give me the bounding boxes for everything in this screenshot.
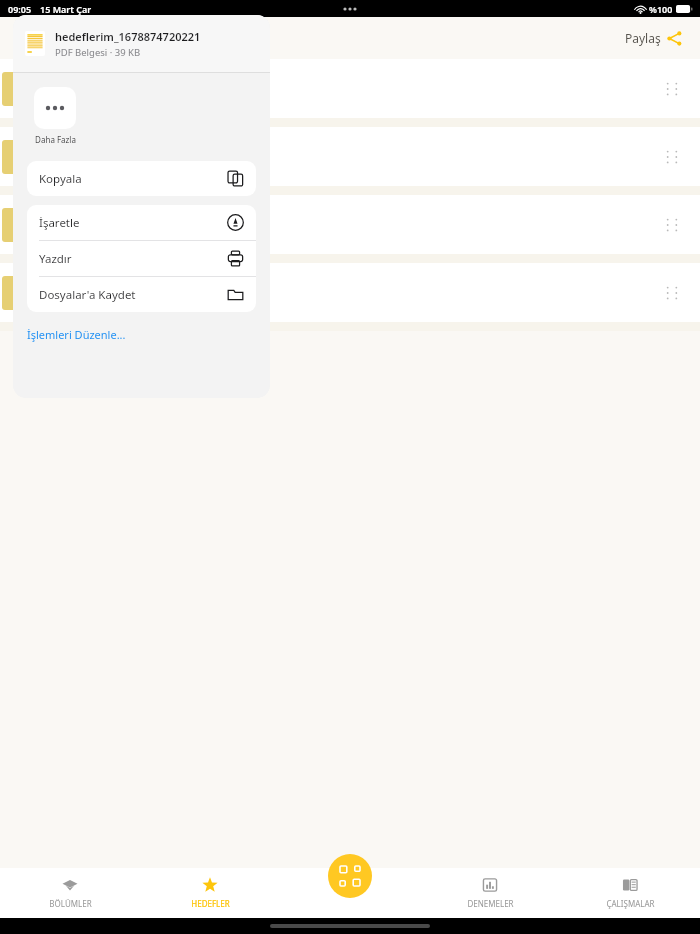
staticText: Paylaş xyxy=(625,30,661,46)
button[interactable] xyxy=(0,263,700,322)
button[interactable]: ÇALIŞMALAR xyxy=(560,868,700,918)
staticText: Kopyala xyxy=(39,171,82,187)
button[interactable]: İşlemleri Düzenle... xyxy=(27,322,126,346)
button[interactable]: Menü xyxy=(328,854,372,898)
staticText: 15 Mart Çar xyxy=(40,3,92,15)
staticText: %100 xyxy=(649,3,673,15)
button[interactable]: Yazdır xyxy=(27,241,256,276)
button[interactable]: hedeflerim_1678874720221 xyxy=(13,15,270,72)
staticText: DENEMELER xyxy=(467,898,514,909)
button[interactable]: Dosyalar'a Kaydet xyxy=(27,277,256,312)
staticText: İşlemleri Düzenle... xyxy=(27,327,126,342)
staticText: Daha Fazla xyxy=(35,134,76,145)
button[interactable]: İşaretle xyxy=(27,205,256,240)
staticText: 09:05 xyxy=(8,3,32,15)
button[interactable]: Kopyala xyxy=(27,161,256,196)
button[interactable] xyxy=(0,195,700,254)
button[interactable] xyxy=(0,59,700,118)
staticText: PDF Belgesi · 39 KB xyxy=(55,46,141,59)
button[interactable] xyxy=(0,127,700,186)
button[interactable]: BÖLÜMLER xyxy=(0,868,140,918)
staticText: HEDEFLER xyxy=(191,898,230,909)
staticText: Yazdır xyxy=(39,251,72,267)
staticText: Dosyalar'a Kaydet xyxy=(39,287,136,303)
staticText: ÇALIŞMALAR xyxy=(606,898,655,909)
staticText: hedeflerim_1678874720221 xyxy=(55,29,201,44)
staticText: İşaretle xyxy=(39,215,80,231)
button[interactable]: HEDEFLER xyxy=(140,868,280,918)
button[interactable]: DENEMELER xyxy=(420,868,560,918)
button[interactable]: Daha Fazla xyxy=(27,87,83,145)
staticText: BÖLÜMLER xyxy=(49,898,92,909)
button[interactable]: Paylaş xyxy=(621,26,686,50)
